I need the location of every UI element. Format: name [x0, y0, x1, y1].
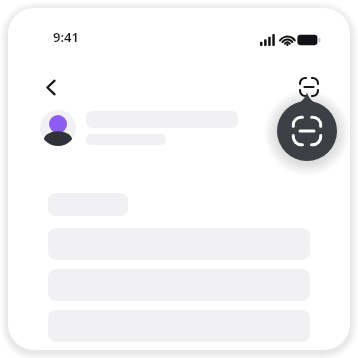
- button[interactable]: Back: [34, 70, 68, 104]
- staticText: 9:41: [53, 28, 79, 46]
- button[interactable]: Scan: [292, 70, 326, 104]
- button[interactable]: Scan code: [269, 88, 345, 164]
